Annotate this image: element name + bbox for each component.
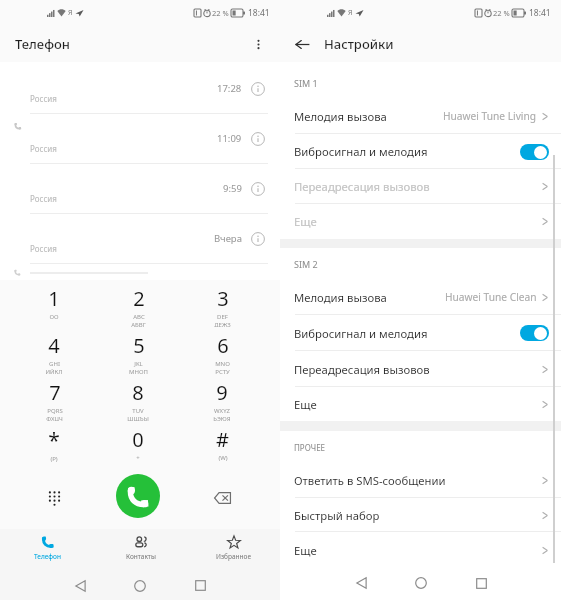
button[interactable]: Вибросигнал и мелодия [280,315,561,351]
staticText: PQRS [47,407,63,415]
staticText: Ответить в SMS-сообщении [294,473,446,488]
button[interactable]: Еще [280,387,561,421]
staticText: DEF [217,313,228,321]
button[interactable]: Ответить в SMS-сообщении [280,462,561,498]
staticText: MNO [215,360,230,368]
staticText: ДЕЖЗ [214,321,231,327]
staticText: JKL [134,360,143,368]
staticText: Избранное [216,552,251,561]
button[interactable]: Call details [249,80,266,97]
staticText: SIM 1 [294,77,318,89]
button[interactable]: Еще [280,532,561,568]
staticText: ABC [133,313,145,321]
button[interactable]: * [12,421,96,467]
staticText: ИЙКЛ [45,368,63,374]
staticText: 1 [48,285,60,312]
button[interactable]: Россия [0,214,280,264]
button[interactable]: Back [289,31,315,57]
button[interactable]: 5 [96,327,180,374]
staticText: # [216,426,229,453]
staticText: 6 [217,332,229,359]
staticText: Контакты [126,552,156,561]
button[interactable]: Контакты [94,529,187,571]
button[interactable]: 2 [96,280,180,327]
button[interactable]: # [180,421,264,467]
staticText: 0 [132,426,144,453]
button[interactable]: Call details [249,230,266,247]
staticText: 7 [49,379,61,406]
staticText: SIM 2 [294,258,318,270]
button[interactable]: Еще [280,204,561,239]
button[interactable]: Телефон [0,529,94,571]
button[interactable]: Recents [463,568,499,598]
button[interactable]: Back [343,568,379,598]
button[interactable]: 3 [180,280,264,327]
button[interactable]: Call details [249,130,266,147]
button[interactable]: Мелодия вызова [280,98,561,134]
staticText: 18:41 [248,7,270,19]
staticText: + [136,454,140,462]
button[interactable]: Переадресация вызовов [280,169,561,204]
staticText: GHI [49,360,60,368]
staticText: ФХЦЧ [46,415,63,421]
staticText: Россия [30,93,57,104]
button[interactable]: More options [245,31,271,57]
button[interactable]: Быстрый набор [280,498,561,532]
staticText: 9:59 [223,182,242,195]
staticText: Быстрый набор [294,508,380,523]
button[interactable]: 9 [180,374,264,421]
button[interactable]: Переадресация вызовов [280,351,561,387]
staticText: 3 [217,285,229,312]
staticText: Россия [30,193,57,204]
staticText: Телефон [34,552,61,561]
staticText: 5 [133,332,145,359]
button[interactable]: Home [122,571,158,600]
button[interactable]: Мелодия вызова [280,279,561,315]
button[interactable]: Избранное [187,529,280,571]
button[interactable]: Call [116,474,160,518]
staticText: Еще [294,543,317,558]
staticText: Еще [294,214,317,229]
button[interactable]: 0 [96,421,180,467]
staticText: 11:09 [217,132,242,145]
staticText: TUV [132,407,144,415]
staticText: (W) [218,454,228,462]
staticText: WXYZ [214,407,230,415]
staticText: Huawei Tune Living [443,109,537,123]
button[interactable]: Россия [0,64,280,114]
button[interactable]: 1 [12,280,96,327]
staticText: Россия [30,143,57,154]
button[interactable]: Back [62,571,98,600]
staticText: Переадресация вызовов [294,179,430,194]
staticText: Вчера [214,232,242,245]
button[interactable]: 6 [180,327,264,374]
staticText: Настройки [324,35,394,53]
staticText: 18:41 [529,7,551,19]
button[interactable]: Вибросигнал и мелодия [280,134,561,169]
button[interactable]: Hide keypad [12,467,96,529]
button[interactable]: Recents [182,571,218,600]
button[interactable]: Россия [0,114,280,164]
staticText: Еще [294,397,317,412]
button[interactable]: Backspace [180,467,264,529]
staticText: Huawei Tune Clean [445,290,537,304]
staticText: 4 [48,332,60,359]
staticText: Мелодия вызова [294,290,387,305]
button[interactable]: Call details [249,180,266,197]
staticText: 9 [216,379,228,406]
button[interactable]: Home [403,568,439,598]
button[interactable]: 7 [12,374,96,421]
staticText: Телефон [15,35,70,53]
staticText: РСТУ [215,368,230,374]
staticText: (P) [50,455,58,463]
button[interactable]: 4 [12,327,96,374]
staticText: 22 % [212,8,229,18]
button[interactable]: Россия [0,164,280,214]
staticText: 22 % [493,8,510,18]
staticText: Переадресация вызовов [294,362,430,377]
staticText: МНОП [129,368,148,374]
staticText: ОО [49,313,59,321]
staticText: Вибросигнал и мелодия [294,326,428,341]
staticText: ШЩЪЫ [127,415,149,421]
button[interactable]: 8 [96,374,180,421]
